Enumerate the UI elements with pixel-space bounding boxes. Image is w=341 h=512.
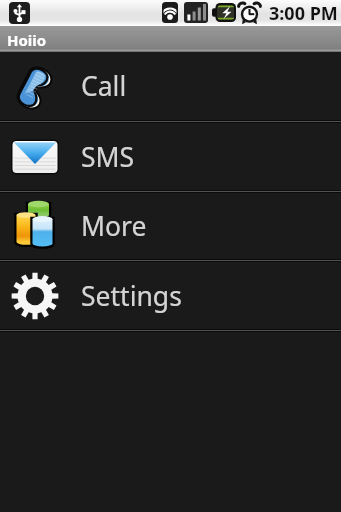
other: Alarm set — [239, 2, 260, 23]
staticText: Call — [81, 68, 127, 104]
other: Wi-Fi signal — [162, 2, 178, 23]
button[interactable]: SMS — [0, 123, 341, 190]
staticText: More — [81, 208, 147, 244]
button[interactable]: Call — [0, 52, 341, 120]
button[interactable]: More — [0, 193, 341, 259]
staticText: SMS — [81, 139, 135, 175]
staticText: Settings — [81, 278, 182, 314]
other: USB connected — [9, 2, 30, 24]
button[interactable]: Settings — [0, 262, 341, 329]
other: Mobile signal strength — [184, 2, 208, 23]
staticText: Hoiio — [7, 30, 47, 50]
other: Battery charging — [212, 3, 236, 22]
staticText: 3:00 PM — [269, 1, 338, 26]
